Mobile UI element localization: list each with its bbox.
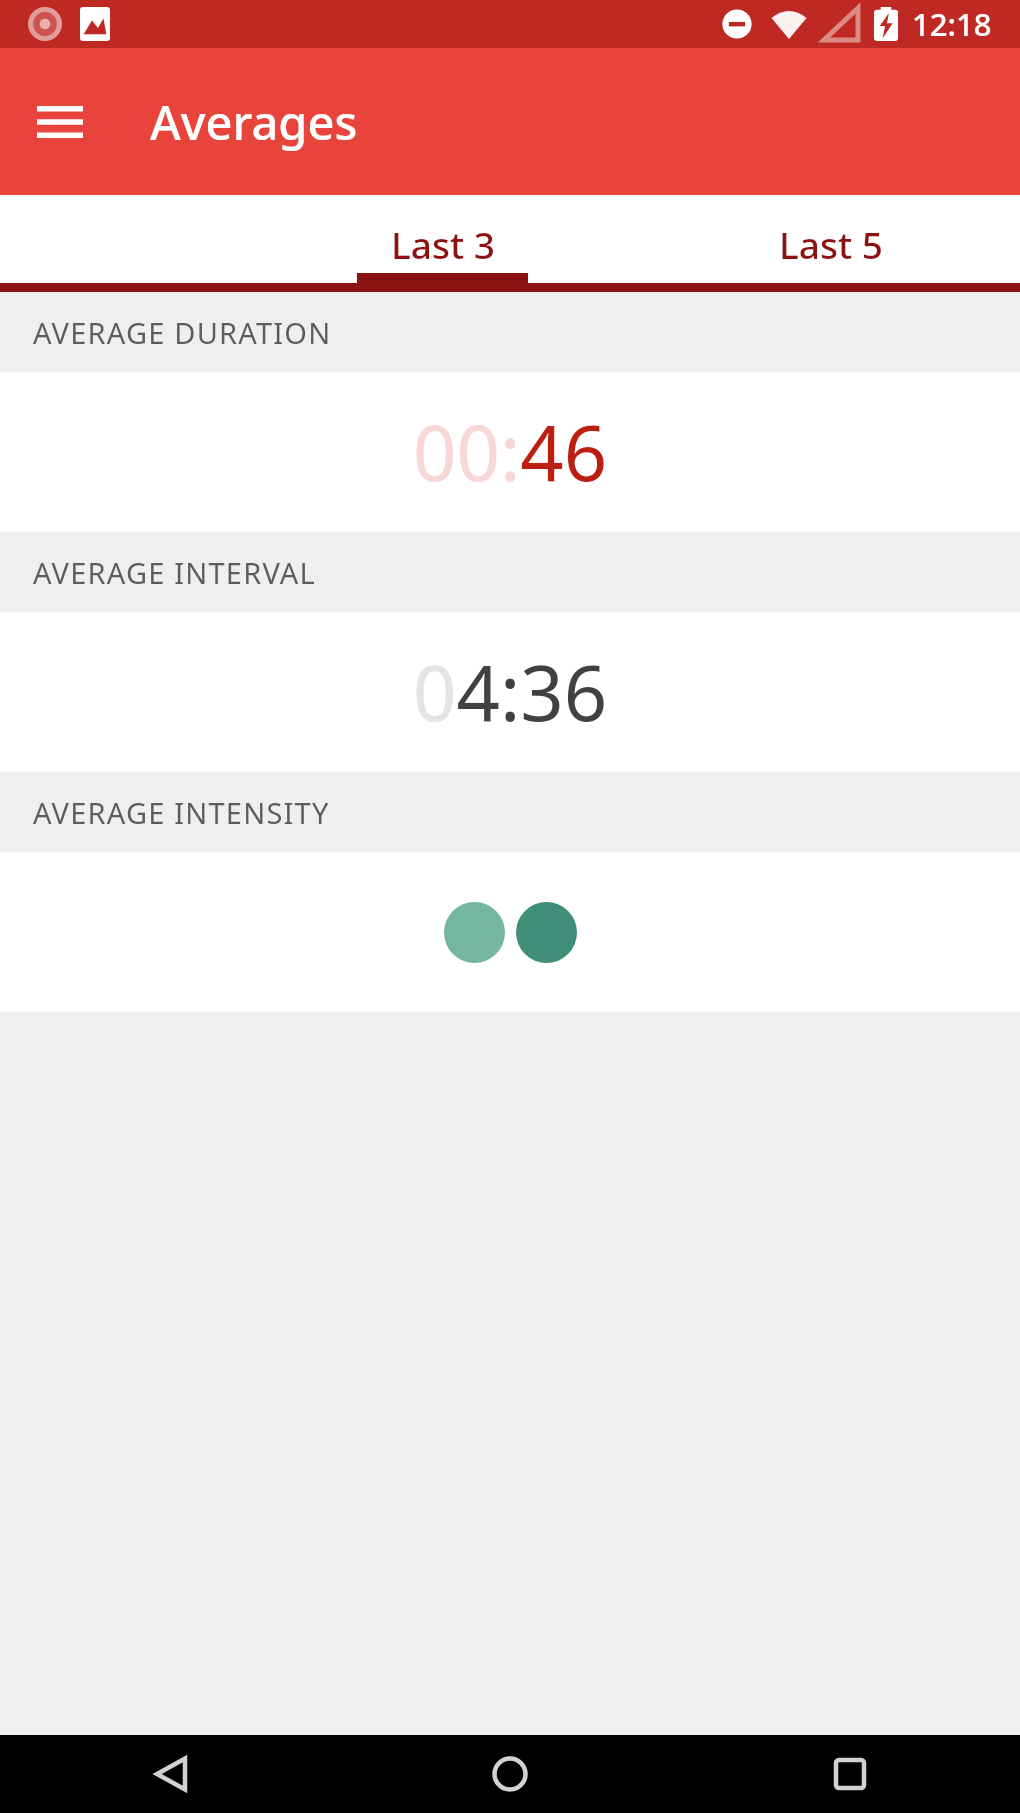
button[interactable]: Last 3	[357, 195, 528, 292]
staticText: AVERAGE DURATION	[33, 313, 332, 352]
button[interactable]: Last 5	[745, 195, 916, 292]
button[interactable]	[0, 852, 1020, 1012]
button[interactable]: Recent apps	[680, 1735, 1020, 1813]
button[interactable]: 04:36	[0, 612, 1020, 772]
button[interactable]: Open navigation drawer	[18, 80, 102, 164]
staticText: Averages	[150, 90, 358, 154]
staticText: AVERAGE INTERVAL	[33, 553, 316, 592]
staticText: Last 3	[391, 219, 495, 269]
staticText: Last 5	[779, 219, 883, 269]
button[interactable]: Home	[340, 1735, 680, 1813]
button[interactable]: Back	[0, 1735, 340, 1813]
button[interactable]: 00:46	[0, 372, 1020, 532]
staticText: AVERAGE INTENSITY	[33, 793, 330, 832]
staticText: 00:46	[413, 400, 608, 504]
staticText: 04:36	[413, 640, 608, 744]
staticText: 12:18	[912, 3, 992, 45]
